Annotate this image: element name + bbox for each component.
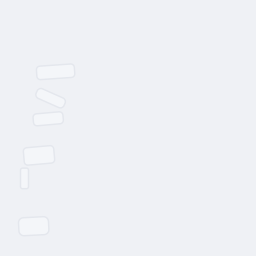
button[interactable]: Item two <box>35 93 66 103</box>
button[interactable]: Item one <box>37 65 75 78</box>
button[interactable]: Item five <box>20 168 28 189</box>
button[interactable]: Item six <box>19 217 49 235</box>
button[interactable]: Item four <box>24 147 54 164</box>
button[interactable]: Item three <box>33 113 63 125</box>
